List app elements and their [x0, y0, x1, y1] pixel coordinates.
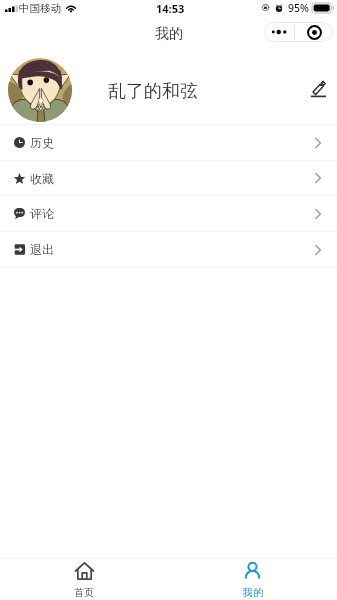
staticText: 退出 — [30, 242, 54, 257]
button[interactable]: 我的 — [168, 559, 337, 600]
staticText: 首页 — [74, 586, 94, 599]
button[interactable]: Edit nickname — [298, 70, 334, 106]
staticText: 95% — [288, 1, 309, 15]
staticText: 我的 — [155, 25, 183, 43]
staticText: 历史 — [30, 135, 54, 150]
button[interactable]: 收藏 — [0, 161, 337, 195]
button[interactable]: 退出 — [0, 232, 337, 267]
staticText: 评论 — [30, 206, 54, 221]
staticText: 乱了的和弦 — [108, 80, 198, 103]
button[interactable]: 评论 — [0, 196, 337, 231]
staticText: 中国移动 — [19, 2, 61, 15]
staticText: 我的 — [243, 586, 263, 599]
button[interactable]: 乱了的和弦 — [0, 48, 337, 124]
button[interactable]: 首页 — [0, 559, 168, 600]
staticText: 收藏 — [30, 171, 54, 186]
staticText: 14:53 — [156, 1, 185, 16]
button[interactable]: More options — [264, 22, 333, 42]
button[interactable]: 历史 — [0, 125, 337, 160]
